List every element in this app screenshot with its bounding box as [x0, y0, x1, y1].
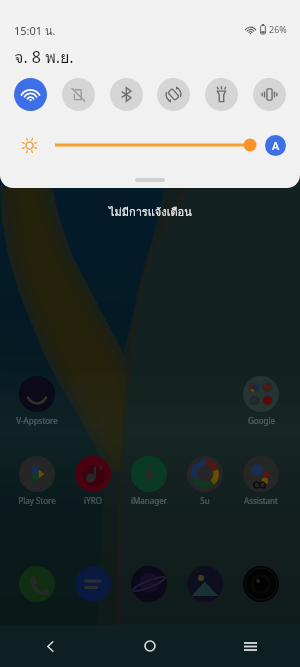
staticText: iManager: [131, 495, 167, 506]
button[interactable]: Vibrate: [253, 78, 286, 111]
button[interactable]: Messages: [65, 566, 121, 602]
staticText: V-Appstore: [16, 415, 58, 426]
staticText: iYRO: [84, 495, 102, 506]
button[interactable]: Mute: [62, 78, 95, 111]
staticText: A: [272, 138, 280, 153]
button[interactable]: Auto brightness: [265, 135, 286, 156]
staticText: Assistant: [244, 495, 278, 506]
button[interactable]: Recent apps: [200, 625, 300, 667]
button[interactable]: Browser: [121, 566, 177, 602]
staticText: จ. 8 พ.ย.: [14, 45, 74, 70]
button[interactable]: Camera: [233, 566, 289, 602]
button[interactable]: Google: [233, 376, 289, 426]
button[interactable]: Play Store: [9, 456, 65, 506]
staticText: 15:01 น.: [14, 22, 56, 39]
staticText: ไม่มีการแจ้งเตือน: [109, 203, 192, 220]
button[interactable]: Flashlight: [205, 78, 238, 111]
button[interactable]: Back: [0, 625, 100, 667]
staticText: 26%: [269, 23, 287, 35]
button[interactable]: Gallery: [177, 566, 233, 602]
button[interactable]: Su: [177, 456, 233, 506]
button[interactable]: iManager: [121, 456, 177, 506]
button[interactable]: Phone: [9, 566, 65, 602]
staticText: Play Store: [18, 495, 56, 506]
staticText: Google: [248, 415, 275, 426]
button[interactable]: iYRO: [65, 456, 121, 506]
button[interactable]: Auto rotate: [157, 78, 190, 111]
button[interactable]: Home: [100, 625, 200, 667]
button[interactable]: Assistant: [233, 456, 289, 506]
button[interactable]: Wi-Fi: [14, 78, 47, 111]
staticText: Su: [200, 495, 210, 506]
button[interactable]: Bluetooth: [110, 78, 143, 111]
button[interactable]: Brightness: [55, 135, 257, 155]
button[interactable]: V-Appstore: [9, 376, 65, 426]
